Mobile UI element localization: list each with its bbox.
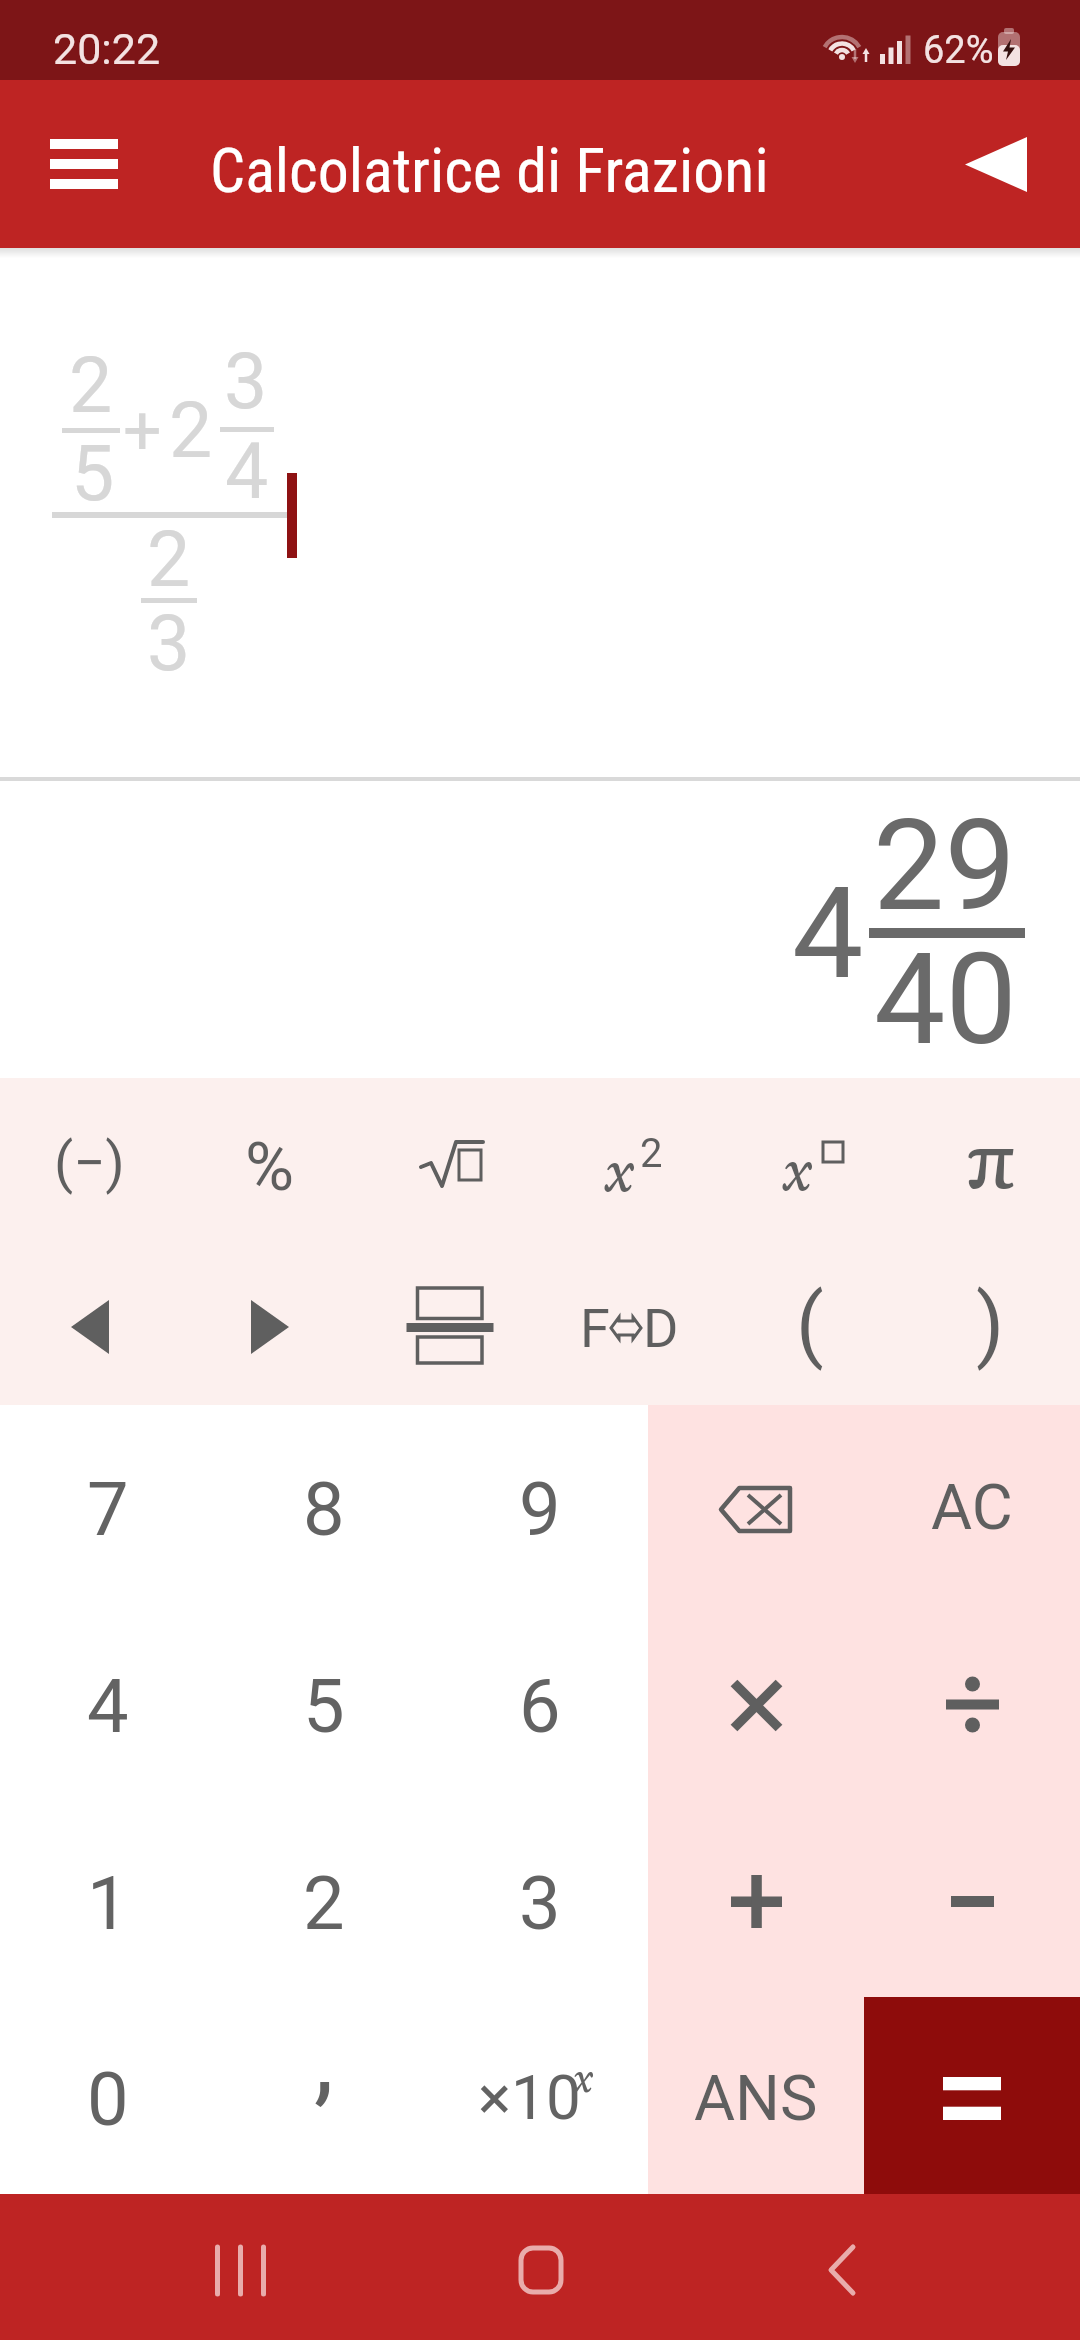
button[interactable]: F: [540, 1242, 720, 1405]
staticText: 6: [519, 1663, 561, 1750]
staticText: 3: [224, 337, 268, 427]
staticText: ,: [314, 2000, 334, 2117]
button[interactable]: 7: [0, 1405, 216, 1602]
staticText: 3: [519, 1860, 561, 1947]
button[interactable]: [30, 110, 138, 218]
staticText: 5: [303, 1663, 345, 1750]
button[interactable]: π: [900, 1078, 1080, 1242]
button[interactable]: 0: [0, 1997, 216, 2194]
staticText: ×10: [478, 2061, 581, 2134]
staticText: +: [123, 391, 162, 471]
button[interactable]: [360, 1242, 540, 1405]
button[interactable]: [481, 2217, 601, 2323]
button[interactable]: (−): [0, 1078, 180, 1242]
staticText: 5: [71, 429, 115, 519]
button[interactable]: 9: [432, 1405, 648, 1602]
staticText: F: [580, 1297, 610, 1360]
staticText: 20:22: [53, 24, 161, 74]
staticText: 7: [87, 1466, 129, 1553]
button[interactable]: 8: [216, 1405, 432, 1602]
staticText: 40: [874, 925, 1017, 1074]
button[interactable]: ×10: [432, 1997, 648, 2194]
staticText: 2: [640, 1130, 663, 1177]
button[interactable]: [864, 1799, 1080, 1996]
button[interactable]: 6: [432, 1602, 648, 1799]
staticText: 2: [303, 1860, 345, 1947]
staticText: x: [605, 1137, 635, 1211]
staticText: 1: [87, 1860, 129, 1947]
button[interactable]: 2: [216, 1799, 432, 1996]
staticText: AC: [931, 1471, 1013, 1545]
button[interactable]: [0, 1242, 180, 1405]
staticText: (: [796, 1277, 824, 1372]
button[interactable]: 4: [0, 1602, 216, 1799]
button[interactable]: [782, 2217, 902, 2323]
button[interactable]: ANS: [648, 1997, 864, 2194]
button[interactable]: x: [720, 1078, 900, 1242]
button[interactable]: (: [720, 1242, 900, 1405]
staticText: x: [783, 1136, 813, 1210]
button[interactable]: [864, 1997, 1080, 2194]
button[interactable]: [648, 1799, 864, 1996]
staticText: 2: [147, 515, 191, 605]
staticText: 3: [147, 599, 191, 689]
button[interactable]: [360, 1078, 540, 1242]
staticText: D: [643, 1297, 679, 1360]
staticText: 0: [87, 2056, 129, 2143]
button[interactable]: 3: [432, 1799, 648, 1996]
staticText: 2: [69, 341, 113, 431]
button[interactable]: 5: [216, 1602, 432, 1799]
button[interactable]: x: [540, 1078, 720, 1242]
button[interactable]: [864, 1602, 1080, 1799]
button[interactable]: ): [900, 1242, 1080, 1405]
staticText: 29: [873, 791, 1016, 940]
button[interactable]: AC: [864, 1405, 1080, 1602]
staticText: 4: [225, 427, 269, 517]
staticText: Calcolatrice di Frazioni: [210, 134, 769, 207]
staticText: x: [573, 2055, 594, 2106]
button[interactable]: [180, 1242, 360, 1405]
staticText: π: [966, 1114, 1015, 1216]
staticText: 62%: [923, 28, 994, 73]
button[interactable]: [648, 1405, 864, 1602]
staticText: 4: [87, 1663, 129, 1750]
staticText: %: [245, 1128, 295, 1207]
button[interactable]: %: [180, 1078, 360, 1242]
staticText: 4: [792, 859, 864, 1008]
button[interactable]: 1: [0, 1799, 216, 1996]
button[interactable]: [938, 110, 1053, 218]
button[interactable]: ,: [216, 1997, 432, 2194]
staticText: 9: [519, 1466, 561, 1553]
staticText: 2: [169, 386, 213, 476]
staticText: 8: [303, 1466, 345, 1553]
staticText: (−): [54, 1130, 125, 1196]
staticText: ANS: [694, 2062, 818, 2136]
staticText: ): [976, 1277, 1005, 1372]
button[interactable]: [648, 1602, 864, 1799]
button[interactable]: [180, 2217, 300, 2323]
